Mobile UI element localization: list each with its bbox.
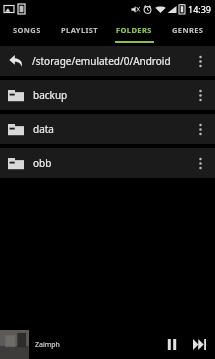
button[interactable]: More options <box>191 114 209 144</box>
staticText: obb <box>33 156 191 170</box>
staticText: SONGS <box>13 25 41 35</box>
button[interactable]: More options <box>191 80 209 110</box>
button[interactable]: Pause <box>159 330 185 359</box>
button[interactable]: GENRES <box>161 18 215 44</box>
staticText: FOLDERS <box>116 25 152 35</box>
staticText: 14:39 <box>188 3 212 15</box>
staticText: GENRES <box>172 25 204 35</box>
button[interactable]: obb <box>0 148 215 178</box>
button[interactable]: More options <box>191 46 209 76</box>
button[interactable] <box>0 330 29 359</box>
button[interactable]: SONGS <box>0 18 53 44</box>
other: Up one level <box>9 54 23 68</box>
button[interactable]: FOLDERS <box>107 18 161 44</box>
button[interactable]: PLAYLIST <box>53 18 107 44</box>
button[interactable]: Up one level <box>0 46 215 76</box>
staticText: PLAYLIST <box>61 25 99 35</box>
button[interactable]: data <box>0 114 215 144</box>
staticText: Zaimph <box>35 340 60 350</box>
button[interactable]: More options <box>191 148 209 178</box>
staticText: /storage/emulated/0/Android <box>32 54 191 68</box>
button[interactable]: Next track <box>185 330 213 359</box>
staticText: data <box>33 122 191 136</box>
staticText: backup <box>33 88 191 102</box>
button[interactable]: backup <box>0 80 215 110</box>
